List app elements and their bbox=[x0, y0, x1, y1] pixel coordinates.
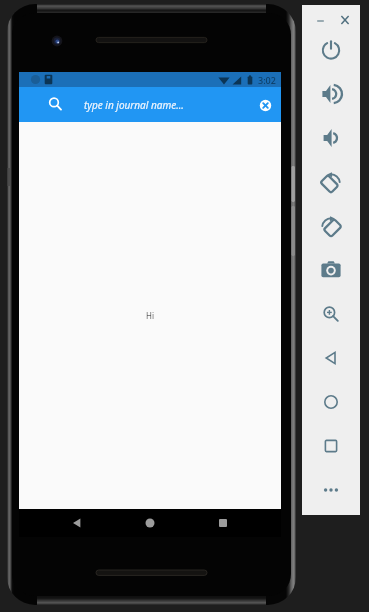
button[interactable]: Recent apps bbox=[209, 509, 237, 537]
button[interactable]: Take screenshot bbox=[317, 256, 345, 284]
button[interactable]: Power bbox=[317, 36, 345, 64]
button[interactable]: Search bbox=[45, 94, 67, 116]
button[interactable]: Back bbox=[63, 509, 91, 537]
staticText: Hi bbox=[146, 310, 154, 321]
button[interactable]: Zoom bbox=[317, 300, 345, 328]
button[interactable]: Rotate right bbox=[317, 212, 345, 240]
button[interactable]: Volume up bbox=[317, 80, 345, 108]
button[interactable]: Volume down bbox=[317, 124, 345, 152]
button[interactable]: Minimize bbox=[308, 8, 332, 32]
button[interactable]: More bbox=[317, 476, 345, 504]
button[interactable]: Home bbox=[136, 509, 164, 537]
button[interactable]: Overview bbox=[317, 432, 345, 460]
button[interactable]: Back bbox=[317, 344, 345, 372]
staticText: type in journal name... bbox=[84, 98, 184, 112]
button[interactable]: Close bbox=[333, 8, 357, 32]
button[interactable]: Clear search bbox=[254, 94, 276, 116]
staticText: 3:02 bbox=[258, 74, 276, 86]
button[interactable]: Home bbox=[317, 388, 345, 416]
button[interactable]: Rotate left bbox=[317, 168, 345, 196]
